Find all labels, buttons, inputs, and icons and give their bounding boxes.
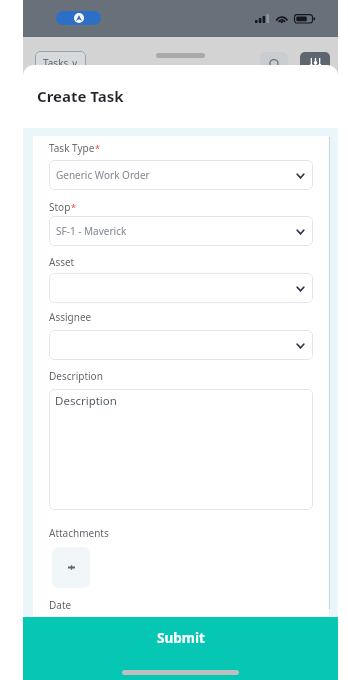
staticText: Attachments: [49, 526, 109, 540]
button[interactable]: Generic Work Order: [49, 160, 313, 190]
staticText: Stop: [49, 200, 71, 214]
staticText: Task Type: [49, 141, 95, 155]
staticText: *: [71, 201, 76, 213]
staticText: Description: [55, 393, 117, 409]
staticText: SF-1 - Maverick: [56, 224, 127, 238]
staticText: Asset: [49, 255, 75, 269]
button[interactable]: [49, 273, 313, 303]
staticText: Tasks ∨: [43, 56, 79, 70]
button[interactable]: Search: [260, 52, 288, 76]
button[interactable]: Tasks ∨: [35, 51, 86, 75]
staticText: Submit: [157, 629, 205, 647]
button[interactable]: [49, 330, 313, 360]
staticText: Create Task: [37, 86, 124, 106]
button[interactable]: Filter: [300, 52, 330, 76]
staticText: Generic Work Order: [56, 168, 150, 182]
staticText: Assignee: [49, 310, 92, 324]
staticText: Description: [49, 369, 103, 383]
button[interactable]: Description: [49, 389, 313, 510]
button[interactable]: Submit: [23, 617, 338, 680]
staticText: *: [95, 142, 100, 154]
staticText: Date: [49, 598, 72, 612]
button[interactable]: Add attachment: [52, 547, 90, 588]
button[interactable]: SF-1 - Maverick: [49, 216, 313, 246]
